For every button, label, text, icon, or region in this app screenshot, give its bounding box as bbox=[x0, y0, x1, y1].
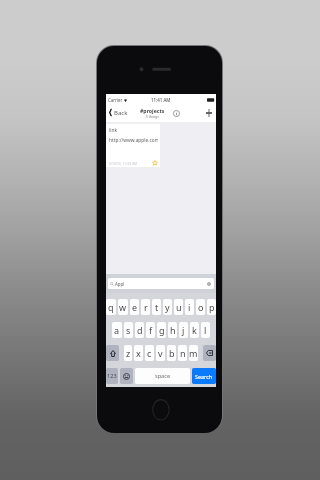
button[interactable]: b bbox=[167, 345, 176, 361]
button[interactable]: u bbox=[174, 299, 183, 315]
staticText: #projects bbox=[140, 107, 165, 114]
staticText: Appl bbox=[115, 281, 125, 287]
button[interactable]: h bbox=[168, 322, 177, 338]
staticText: s bbox=[126, 324, 131, 336]
staticText: u bbox=[176, 301, 182, 313]
button[interactable]: link bbox=[106, 124, 160, 167]
staticText: t bbox=[155, 301, 159, 313]
staticText: http://www.apple.com bbox=[109, 137, 158, 144]
button[interactable]: m bbox=[189, 345, 198, 361]
button[interactable]: q bbox=[106, 299, 116, 315]
staticText: f bbox=[149, 324, 153, 336]
button[interactable]: y bbox=[163, 299, 172, 315]
button[interactable]: z bbox=[124, 345, 132, 361]
button[interactable]: p bbox=[207, 299, 216, 315]
button[interactable]: v bbox=[156, 345, 165, 361]
button[interactable]: a bbox=[112, 322, 122, 338]
staticText: e bbox=[132, 301, 138, 313]
staticText: z bbox=[126, 347, 131, 359]
staticText: space bbox=[155, 372, 171, 380]
button[interactable]: j bbox=[179, 322, 188, 338]
staticText: Carrier bbox=[108, 97, 123, 103]
button[interactable]: Info bbox=[171, 108, 181, 118]
staticText: r bbox=[144, 301, 148, 313]
staticText: y bbox=[165, 301, 170, 313]
button[interactable]: x bbox=[134, 345, 143, 361]
staticText: i bbox=[188, 301, 191, 313]
button[interactable]: w bbox=[118, 299, 128, 315]
button[interactable]: space bbox=[135, 368, 190, 384]
staticText: h bbox=[170, 324, 176, 336]
button[interactable]: Search bbox=[192, 368, 216, 384]
button[interactable]: g bbox=[157, 322, 166, 338]
staticText: p bbox=[209, 301, 215, 313]
button[interactable]: Appl bbox=[108, 278, 214, 289]
staticText: a bbox=[114, 324, 120, 336]
staticText: d bbox=[137, 324, 143, 336]
staticText: m bbox=[189, 347, 198, 359]
button[interactable]: Add bbox=[203, 107, 214, 118]
staticText: 2/16/16, 11:39 AM bbox=[109, 161, 138, 165]
button[interactable]: c bbox=[145, 345, 154, 361]
button[interactable]: d bbox=[135, 322, 144, 338]
staticText: k bbox=[192, 324, 197, 336]
button[interactable]: e bbox=[130, 299, 139, 315]
staticText: Search bbox=[195, 373, 213, 380]
staticText: 5 things bbox=[146, 114, 159, 119]
button[interactable]: i bbox=[185, 299, 194, 315]
button[interactable]: n bbox=[178, 345, 187, 361]
button[interactable]: r bbox=[141, 299, 150, 315]
staticText: l bbox=[204, 324, 207, 336]
staticText: 11:41 AM bbox=[151, 97, 171, 103]
staticText: n bbox=[180, 347, 186, 359]
staticText: c bbox=[147, 347, 152, 359]
button[interactable]: t bbox=[152, 299, 161, 315]
button[interactable]: s bbox=[124, 322, 133, 338]
staticText: b bbox=[169, 347, 175, 359]
staticText: w bbox=[119, 301, 127, 313]
staticText: link bbox=[109, 127, 118, 134]
button[interactable]: o bbox=[196, 299, 205, 315]
staticText: g bbox=[159, 324, 165, 336]
button[interactable]: Numbers bbox=[106, 368, 118, 384]
staticText: j bbox=[182, 324, 185, 336]
button[interactable]: l bbox=[201, 322, 210, 338]
staticText: x bbox=[136, 347, 141, 359]
button[interactable]: Back bbox=[106, 108, 131, 117]
button[interactable]: k bbox=[190, 322, 199, 338]
button[interactable]: Shift bbox=[106, 345, 119, 361]
staticText: Back bbox=[114, 109, 128, 117]
button[interactable]: f bbox=[146, 322, 155, 338]
staticText: 123 bbox=[107, 372, 117, 380]
staticText: o bbox=[198, 301, 204, 313]
staticText: v bbox=[158, 347, 163, 359]
button[interactable]: Backspace bbox=[203, 345, 216, 361]
staticText: q bbox=[108, 301, 114, 313]
button[interactable]: Emoji bbox=[120, 368, 133, 384]
